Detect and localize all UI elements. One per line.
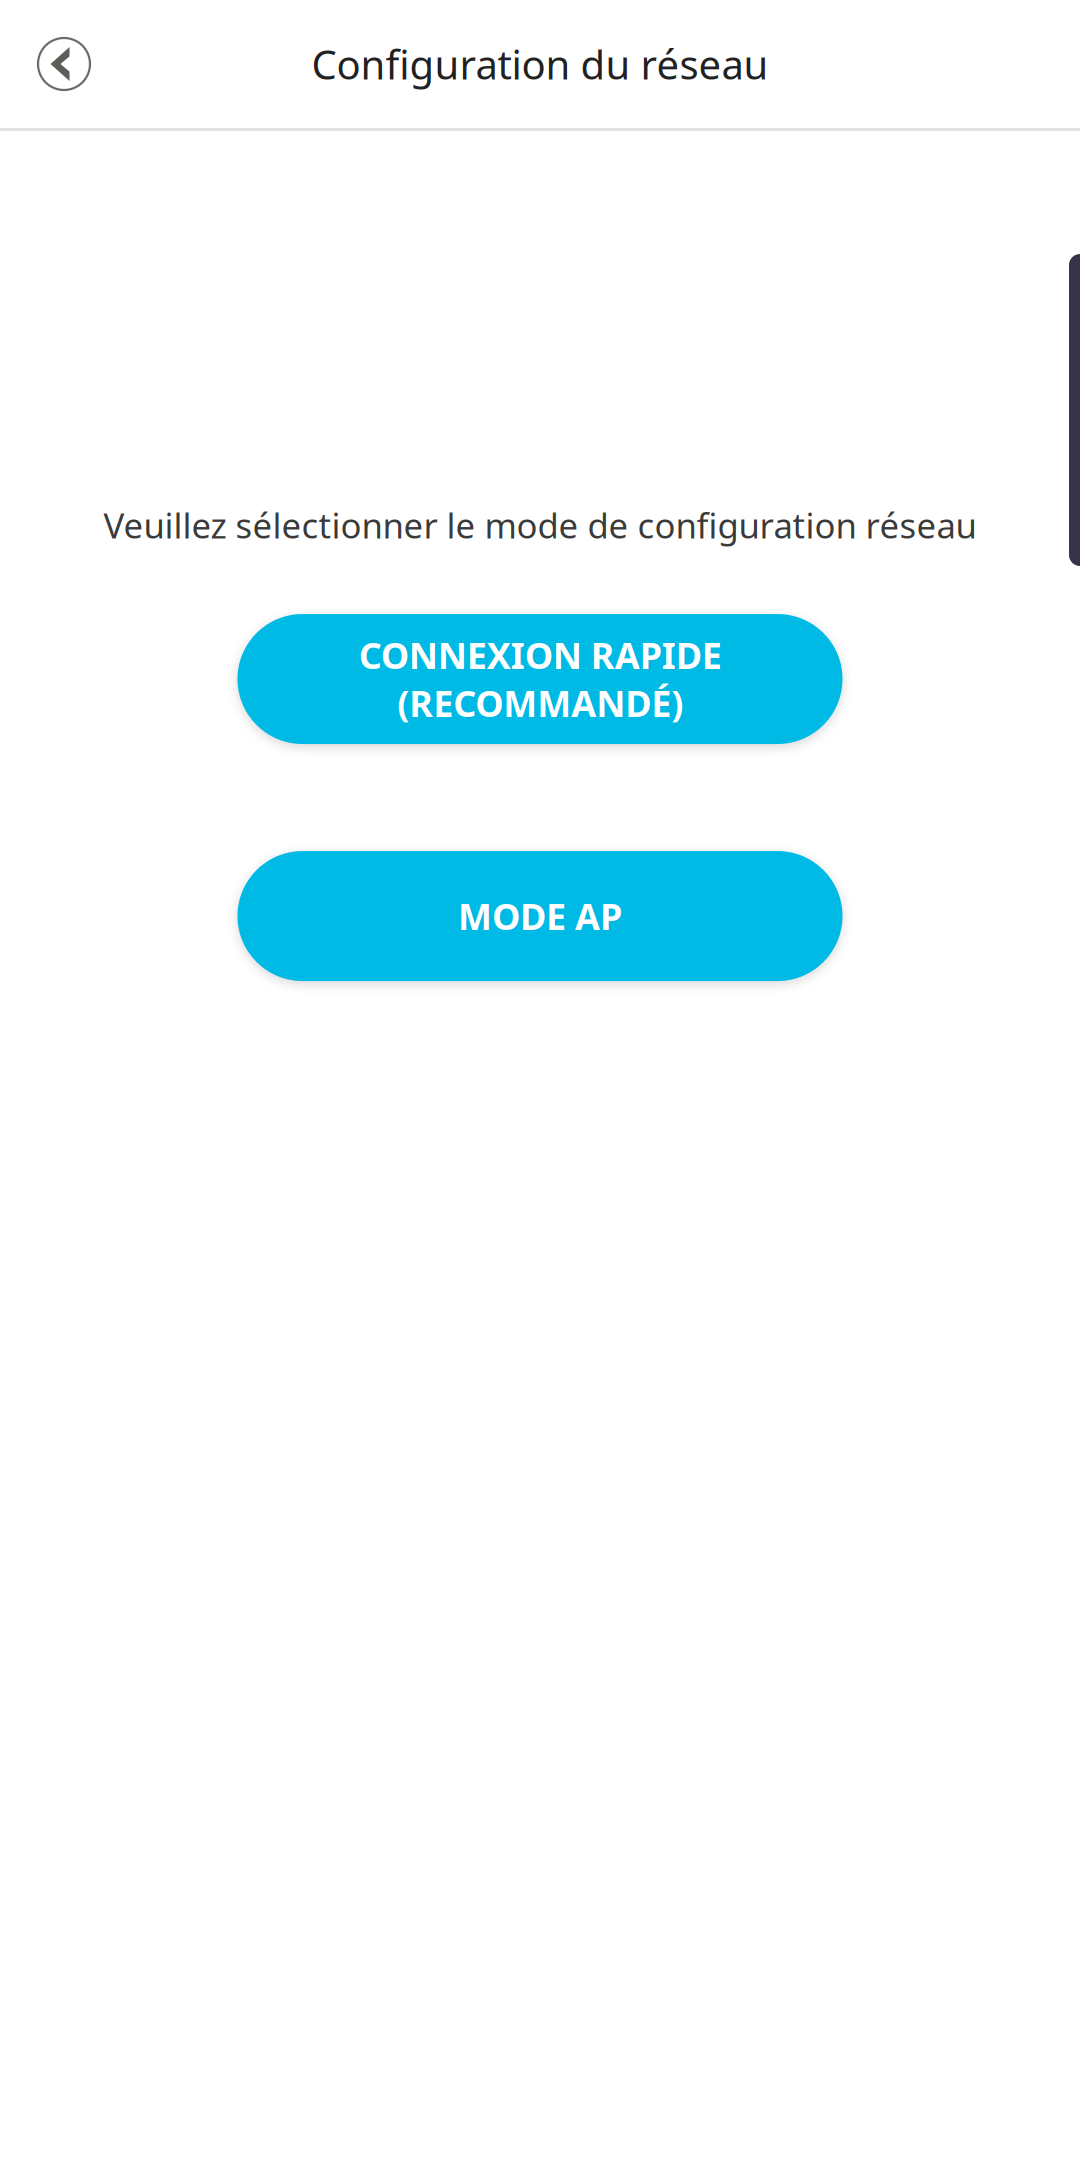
staticText: CONNEXION RAPIDE (RECOMMANDÉ) xyxy=(358,631,721,727)
button[interactable]: CONNEXION RAPIDE (RECOMMANDÉ) xyxy=(237,614,842,744)
staticText: Configuration du réseau xyxy=(311,37,768,90)
staticText: MODE AP xyxy=(458,892,622,940)
button[interactable]: MODE AP xyxy=(237,851,842,981)
button[interactable]: Back xyxy=(0,0,90,128)
staticText: Veuillez sélectionner le mode de configu… xyxy=(103,502,976,548)
